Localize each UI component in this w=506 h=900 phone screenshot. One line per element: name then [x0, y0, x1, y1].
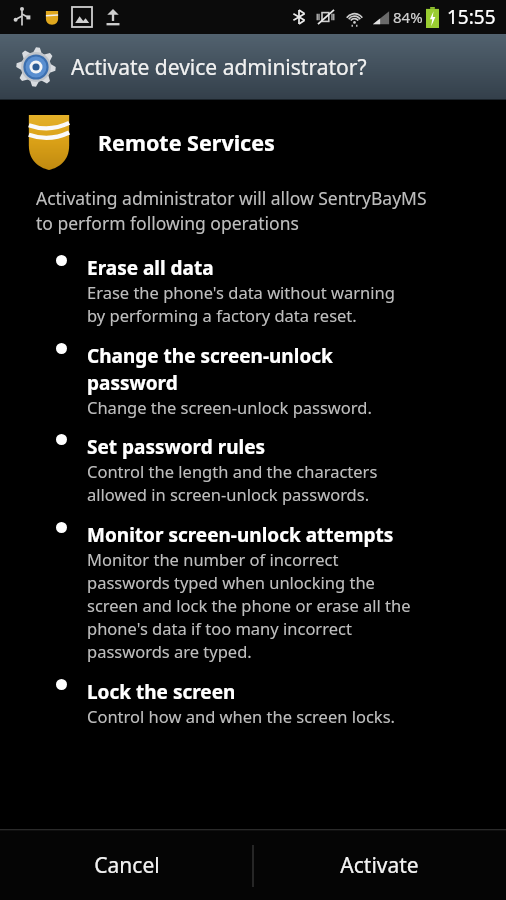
staticText: Activate: [340, 851, 419, 880]
staticText: Change the screen-unlock password.: [87, 396, 372, 418]
staticText: Control the length and the characters al…: [87, 460, 378, 506]
staticText: Erase all data: [87, 255, 214, 281]
staticText: Remote Services: [98, 128, 275, 157]
staticText: Control how and when the screen locks.: [87, 705, 395, 727]
button[interactable]: Cancel: [0, 831, 253, 900]
staticText: Monitor screen-unlock attempts: [87, 522, 394, 548]
staticText: 84%: [393, 7, 423, 27]
staticText: 15:55: [447, 4, 496, 30]
staticText: Cancel: [94, 851, 160, 880]
staticText: Monitor the number of incorrect password…: [87, 548, 411, 663]
staticText: Lock the screen: [87, 679, 236, 705]
staticText: Change the screen-unlock password: [87, 343, 333, 396]
staticText: Erase the phone's data without warning b…: [87, 281, 395, 327]
button[interactable]: Activate: [253, 831, 506, 900]
staticText: Activating administrator will allow Sent…: [36, 186, 427, 235]
staticText: Activate device administrator?: [71, 53, 367, 82]
staticText: Set password rules: [87, 434, 266, 460]
